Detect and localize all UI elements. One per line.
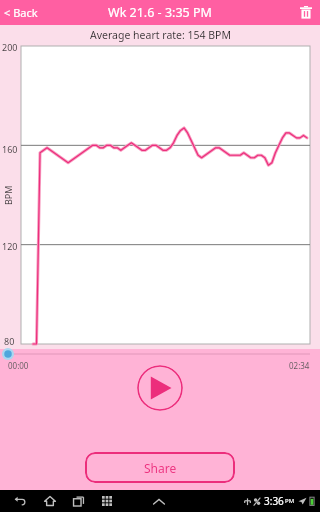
staticText: 3:36 <box>264 494 284 508</box>
button[interactable]: Delete <box>292 0 320 25</box>
staticText: Wk 21.6 - 3:35 PM <box>108 4 212 21</box>
button[interactable]: Seek position <box>2 348 14 360</box>
staticText: < Back <box>4 5 38 20</box>
staticText: PM <box>285 497 295 505</box>
button[interactable]: < Back <box>0 0 58 25</box>
button[interactable]: Play <box>137 365 183 411</box>
button[interactable]: Expand <box>148 490 170 512</box>
staticText: Average heart rate: 154 BPM <box>90 28 231 42</box>
staticText: Share <box>144 460 177 476</box>
button[interactable]: Recent apps <box>68 490 88 512</box>
staticText: 200 <box>2 41 18 53</box>
button[interactable]: All apps <box>97 490 117 512</box>
staticText: 00:00 <box>8 360 29 371</box>
staticText: 160 <box>2 143 18 155</box>
button[interactable]: Share <box>85 452 235 483</box>
staticText: 80 <box>4 335 15 347</box>
button[interactable]: Back <box>10 490 30 512</box>
staticText: 120 <box>2 240 18 252</box>
staticText: 02:34 <box>289 360 310 371</box>
staticText: BPM <box>2 185 14 205</box>
button[interactable]: Home <box>40 490 60 512</box>
